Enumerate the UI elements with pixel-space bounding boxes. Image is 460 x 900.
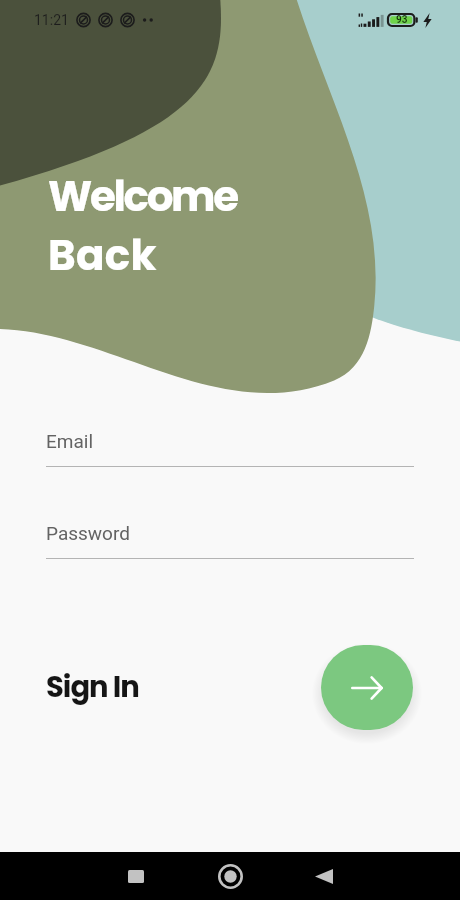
button[interactable]: Email [46, 430, 414, 467]
staticText: Password [46, 522, 130, 544]
button[interactable]: Sign in [321, 645, 413, 730]
staticText: 11:21 [34, 12, 69, 28]
button[interactable]: Home [207, 853, 253, 899]
staticText: Welcome [48, 167, 237, 226]
staticText: 93 [396, 14, 408, 26]
staticText: Back [48, 226, 157, 285]
button[interactable]: Recents [113, 853, 159, 899]
staticText: Sign In [46, 667, 139, 708]
staticText: Email [46, 430, 94, 452]
button[interactable]: Password [46, 522, 414, 559]
button[interactable]: Back [301, 853, 347, 899]
